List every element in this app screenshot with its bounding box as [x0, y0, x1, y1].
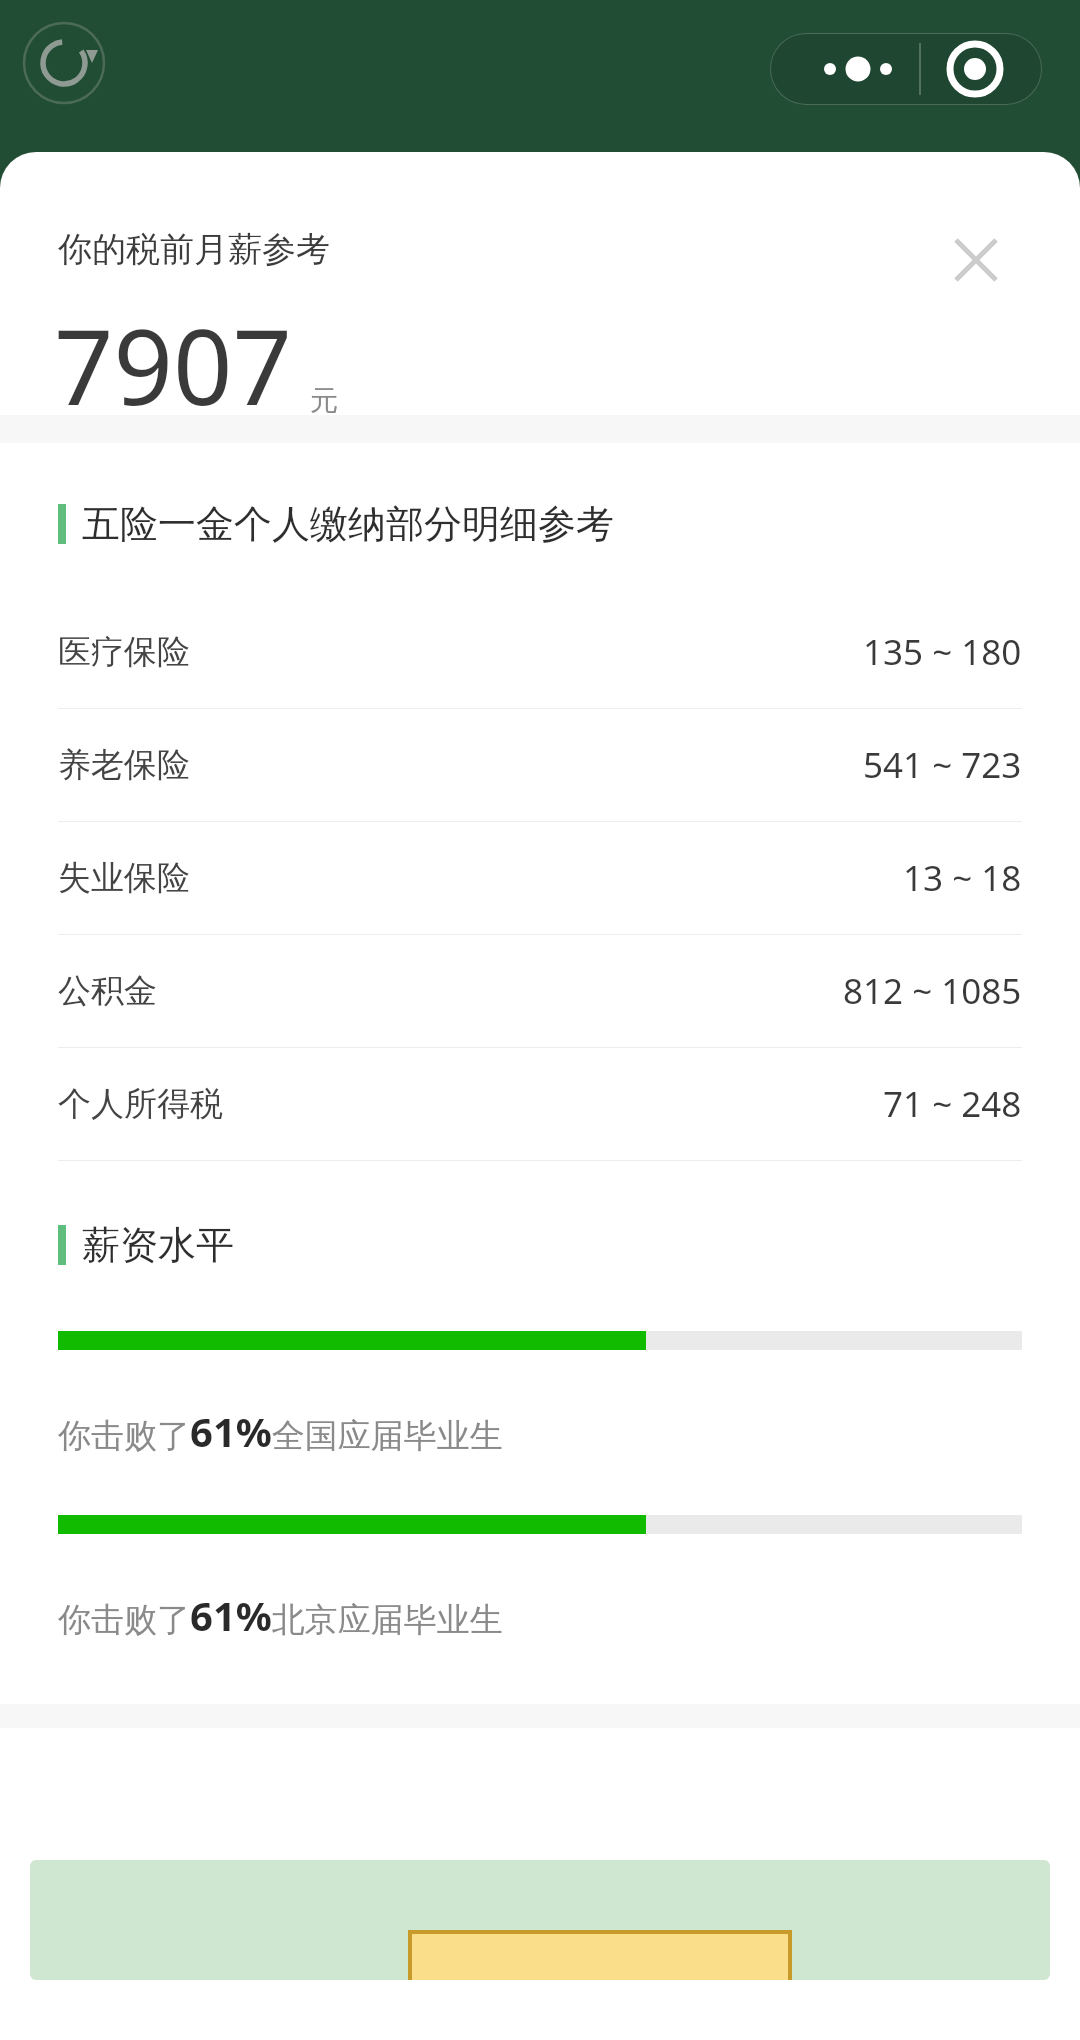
staticText: 个人所得税 [58, 1083, 223, 1125]
button[interactable]: 养老保险 [0, 709, 1080, 821]
button[interactable]: Menu and close [770, 33, 1042, 105]
staticText: 医疗保险 [58, 631, 190, 673]
button[interactable]: Refresh [22, 21, 106, 105]
button[interactable]: 公积金 [0, 935, 1080, 1047]
staticText: 五险一金个人缴纳部分明细参考 [82, 500, 614, 548]
button[interactable]: 医疗保险 [0, 596, 1080, 708]
staticText: 541 ~ 723 [863, 741, 1022, 789]
staticText: 13 ~ 18 [903, 854, 1022, 902]
button[interactable] [30, 1860, 1050, 1980]
button[interactable]: 失业保险 [0, 822, 1080, 934]
button[interactable]: Close [930, 214, 1022, 306]
staticText: 薪资水平 [82, 1221, 234, 1269]
staticText: 71 ~ 248 [883, 1080, 1022, 1128]
staticText: 元 [310, 383, 338, 418]
staticText: 你击败了61%北京应届毕业生 [58, 1588, 503, 1642]
staticText: 你的税前月薪参考 [58, 228, 330, 271]
staticText: 公积金 [58, 970, 157, 1012]
staticText: 你击败了61%全国应届毕业生 [58, 1404, 503, 1458]
button[interactable]: 个人所得税 [0, 1048, 1080, 1160]
staticText: 养老保险 [58, 744, 190, 786]
staticText: 135 ~ 180 [863, 628, 1022, 676]
staticText: 812 ~ 1085 [843, 967, 1022, 1015]
staticText: 失业保险 [58, 857, 190, 899]
staticText: 7907 [54, 294, 292, 436]
